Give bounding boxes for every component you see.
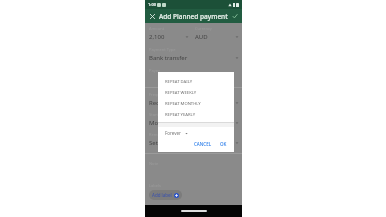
staticText: Frequency: [149, 92, 169, 97]
staticText: Labels: [149, 183, 162, 188]
button[interactable]: CANCEL: [192, 140, 214, 148]
staticText: Add label: [152, 192, 172, 198]
button[interactable]: Payment Type: [145, 47, 242, 62]
staticText: 1:00: [148, 2, 156, 7]
staticText: Payment Type: [149, 47, 176, 52]
staticText: Forever: [165, 130, 181, 136]
button[interactable]: Close: [147, 11, 157, 21]
button[interactable]: OK: [218, 140, 229, 148]
staticText: Add Planned payment: [159, 12, 228, 21]
staticText: Bank transfer: [149, 54, 235, 62]
staticText: Set reminder: [149, 139, 235, 147]
staticText: REPEAT DAILY: [165, 79, 193, 85]
staticText: REPEAT MONTHLY: [165, 101, 201, 107]
button[interactable]: Currency: [195, 26, 242, 41]
staticText: Amount: [149, 26, 165, 31]
button[interactable]: REPEAT WEEKLY: [158, 87, 234, 98]
button[interactable]: REPEAT DAILY: [158, 76, 234, 87]
button[interactable]: Amount: [149, 26, 193, 41]
staticText: Mon, 1 Jan: [149, 119, 235, 127]
staticText: Reminder: [149, 132, 168, 137]
button[interactable]: REPEAT YEARLY: [158, 109, 234, 120]
staticText: Recurring: [149, 99, 235, 107]
button[interactable]: REPEAT MONTHLY: [158, 98, 234, 109]
staticText: 2,100: [149, 33, 185, 41]
staticText: Start date: [149, 112, 168, 117]
button[interactable]: Start date: [145, 112, 242, 127]
staticText: Note: [149, 161, 159, 166]
button[interactable]: Reminder: [145, 132, 242, 147]
staticText: OK: [220, 141, 227, 147]
button[interactable]: Save: [230, 11, 240, 21]
staticText: Payee: [149, 68, 161, 73]
button[interactable]: Add label: [149, 190, 182, 200]
staticText: CANCEL: [194, 141, 212, 147]
button[interactable]: Forever: [165, 130, 188, 136]
staticText: REPEAT YEARLY: [165, 112, 196, 118]
staticText: AUD: [195, 33, 235, 41]
button[interactable]: Frequency: [145, 92, 242, 107]
staticText: REPEAT WEEKLY: [165, 90, 197, 96]
